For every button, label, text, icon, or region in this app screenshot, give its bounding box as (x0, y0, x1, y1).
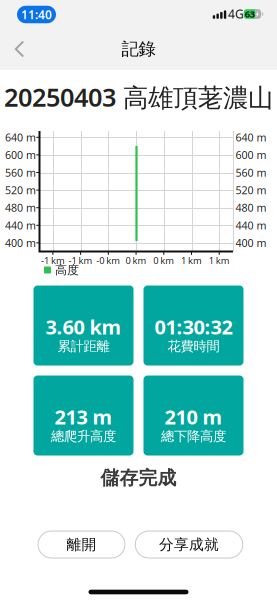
staticText: 440 m (235, 218, 266, 232)
staticText: 4G (228, 6, 244, 22)
staticText: 640 m (5, 130, 36, 144)
staticText: 花費時間 (167, 338, 219, 354)
staticText: 1 km (209, 254, 230, 267)
staticText: 儲存完成 (100, 466, 176, 489)
staticText: 560 m (235, 165, 266, 180)
staticText: 累計距離 (57, 338, 109, 354)
staticText: 560 m (5, 165, 36, 180)
staticText: 離開 (66, 535, 96, 553)
staticText: 記錄 (121, 38, 155, 60)
staticText: -1 km (69, 254, 93, 267)
staticText: 440 m (5, 218, 36, 232)
staticText: 210 m (164, 404, 222, 430)
staticText: -0 km (96, 254, 120, 267)
staticText: 213 m (54, 404, 112, 430)
staticText: 3.60 km (45, 314, 121, 340)
staticText: 1 km (181, 254, 202, 267)
staticText: 520 m (5, 183, 36, 197)
staticText: 480 m (5, 201, 36, 215)
staticText: 11:40 (21, 6, 52, 22)
staticText: 400 m (5, 236, 36, 250)
staticText: 高度 (55, 263, 79, 277)
staticText: 分享成就 (159, 535, 219, 553)
staticText: -1 km (41, 254, 65, 267)
button[interactable]: 離開 (38, 531, 125, 558)
button[interactable]: Back (9, 38, 29, 60)
staticText: 0 km (153, 254, 174, 267)
staticText: 600 m (235, 148, 266, 162)
staticText: 600 m (5, 148, 36, 162)
staticText: 400 m (235, 236, 266, 250)
staticText: 0 km (126, 254, 147, 267)
staticText: 01:30:32 (154, 314, 232, 340)
button[interactable]: 分享成就 (135, 531, 243, 558)
staticText: 480 m (235, 201, 266, 215)
staticText: 20250403 高雄頂荖濃山 (4, 80, 273, 114)
staticText: 總爬升高度 (51, 428, 116, 444)
staticText: 63 (245, 8, 255, 20)
staticText: 總下降高度 (161, 428, 226, 444)
staticText: 640 m (235, 130, 266, 144)
staticText: 520 m (235, 183, 266, 197)
